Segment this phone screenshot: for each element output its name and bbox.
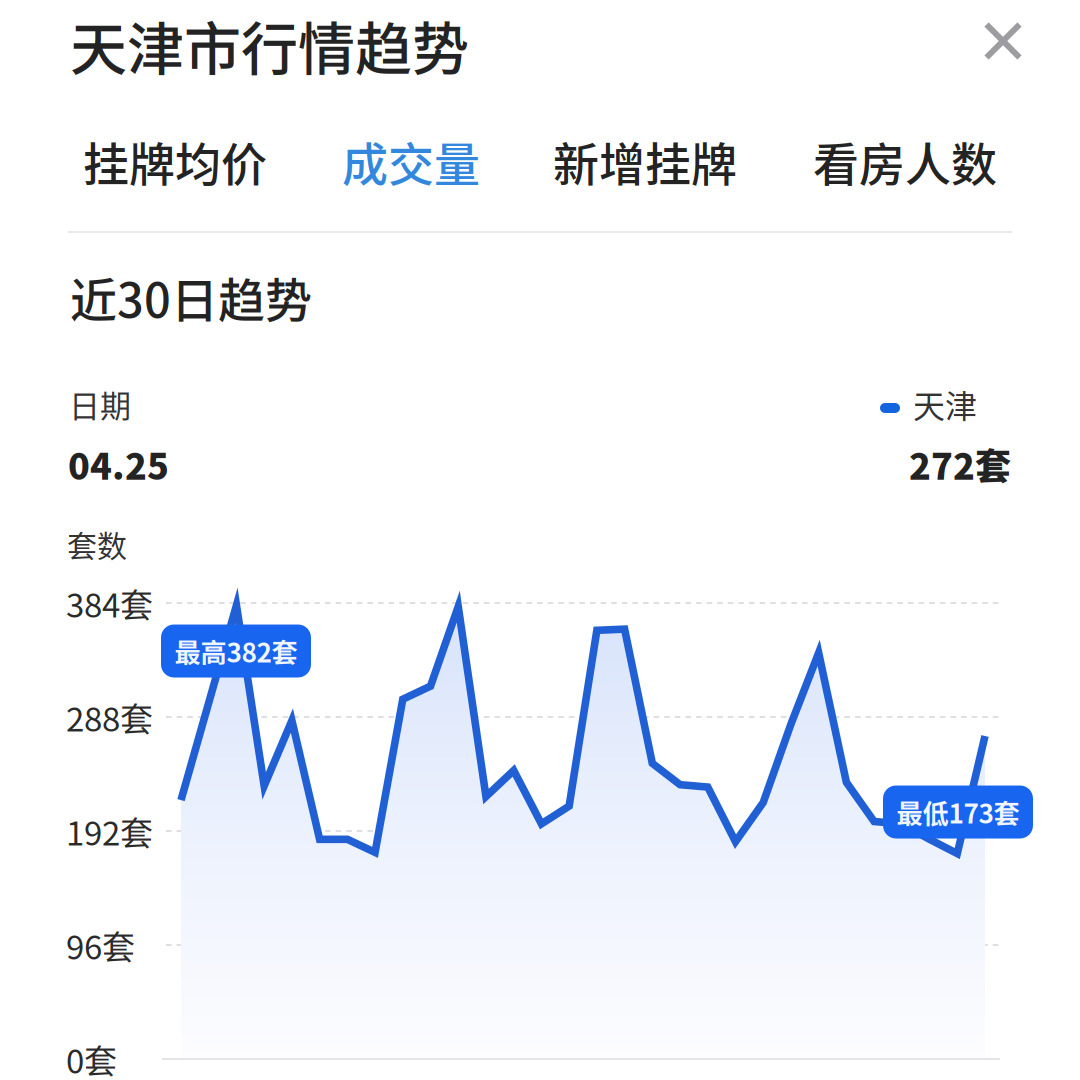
staticText: 挂牌均价: [83, 128, 267, 194]
staticText: 96套: [66, 921, 135, 969]
staticText: 288套: [66, 693, 153, 741]
staticText: 天津市行情趋势: [70, 4, 469, 86]
staticText: 天津: [913, 381, 977, 427]
staticText: 0套: [66, 1035, 117, 1080]
staticText: 套数: [67, 522, 127, 566]
button[interactable]: 新增挂牌: [530, 123, 760, 199]
button[interactable]: 关闭: [965, 3, 1041, 79]
staticText: 04.25: [68, 438, 169, 490]
staticText: 成交量: [342, 128, 480, 194]
staticText: 日期: [69, 382, 131, 426]
staticText: 新增挂牌: [553, 128, 737, 194]
button[interactable]: 挂牌均价: [60, 123, 290, 199]
staticText: 最低173套: [896, 793, 1019, 831]
button[interactable]: 看房人数: [790, 123, 1020, 199]
staticText: 272套: [909, 438, 1011, 490]
staticText: 看房人数: [813, 128, 997, 194]
button[interactable]: 成交量: [296, 123, 526, 199]
staticText: 384套: [66, 579, 153, 627]
staticText: 近30日趋势: [70, 263, 312, 331]
staticText: 192套: [66, 807, 153, 855]
staticText: 最高382套: [174, 632, 297, 670]
